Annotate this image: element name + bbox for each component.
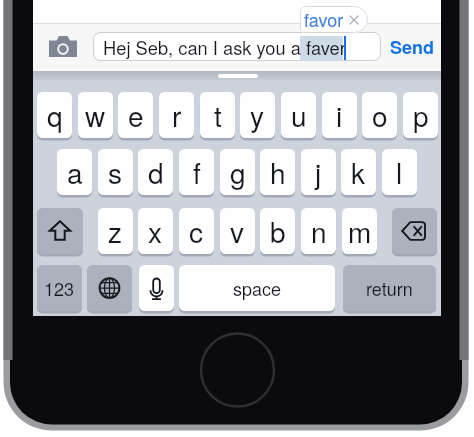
button[interactable]: p bbox=[403, 92, 438, 138]
staticText: b bbox=[270, 211, 286, 251]
button[interactable]: n bbox=[301, 208, 336, 254]
staticText: o bbox=[372, 95, 388, 135]
button[interactable]: t bbox=[200, 92, 235, 138]
button[interactable] bbox=[93, 32, 381, 61]
staticText: t bbox=[214, 95, 222, 135]
button[interactable]: f bbox=[179, 149, 214, 195]
staticText: p bbox=[413, 95, 429, 135]
button[interactable]: s bbox=[98, 149, 133, 195]
staticText: e bbox=[128, 95, 144, 135]
staticText: h bbox=[270, 152, 286, 192]
button[interactable]: g bbox=[220, 149, 255, 195]
staticText: 123 bbox=[44, 275, 75, 301]
staticText: i bbox=[336, 95, 343, 135]
staticText: r bbox=[172, 95, 182, 135]
staticText: g bbox=[230, 152, 246, 192]
staticText: return bbox=[366, 275, 413, 301]
staticText: v bbox=[230, 211, 245, 251]
button[interactable]: h bbox=[260, 149, 295, 195]
staticText: q bbox=[47, 95, 63, 135]
button[interactable]: x bbox=[138, 208, 173, 254]
button[interactable]: d bbox=[138, 149, 173, 195]
button[interactable]: y bbox=[240, 92, 275, 138]
button[interactable]: w bbox=[78, 92, 113, 138]
staticText: u bbox=[291, 95, 307, 135]
button[interactable]: m bbox=[342, 208, 377, 254]
button[interactable]: v bbox=[220, 208, 255, 254]
staticText: a bbox=[67, 152, 83, 192]
button[interactable]: u bbox=[281, 92, 316, 138]
button[interactable]: Dictate bbox=[139, 265, 174, 311]
staticText: w bbox=[85, 95, 106, 135]
button[interactable]: b bbox=[260, 208, 295, 254]
staticText: k bbox=[351, 152, 366, 192]
button[interactable]: a bbox=[57, 149, 92, 195]
button[interactable]: j bbox=[301, 149, 336, 195]
button[interactable]: favor bbox=[300, 6, 368, 33]
staticText: Hej Seb, can I ask you a faver bbox=[103, 34, 346, 60]
button[interactable]: Shift bbox=[37, 208, 83, 254]
button[interactable]: e bbox=[118, 92, 153, 138]
button[interactable]: l bbox=[382, 149, 417, 195]
button[interactable]: Send bbox=[390, 34, 435, 60]
button[interactable]: Backspace bbox=[392, 208, 437, 254]
button[interactable]: space bbox=[179, 265, 335, 311]
button[interactable]: q bbox=[37, 92, 72, 138]
staticText: y bbox=[250, 95, 265, 135]
button[interactable]: return bbox=[343, 265, 436, 311]
button[interactable]: Switch keyboard bbox=[87, 265, 132, 311]
staticText: d bbox=[148, 152, 164, 192]
staticText: favor bbox=[304, 6, 344, 32]
button[interactable]: Camera bbox=[49, 36, 77, 57]
button[interactable]: i bbox=[322, 92, 357, 138]
button[interactable]: k bbox=[341, 149, 376, 195]
staticText: l bbox=[396, 152, 403, 192]
staticText: space bbox=[233, 275, 282, 301]
staticText: x bbox=[148, 211, 163, 251]
staticText: j bbox=[315, 152, 322, 192]
staticText: n bbox=[311, 211, 327, 251]
button[interactable]: c bbox=[179, 208, 214, 254]
button[interactable]: r bbox=[159, 92, 194, 138]
button[interactable]: o bbox=[362, 92, 397, 138]
staticText: z bbox=[108, 211, 123, 251]
button[interactable]: z bbox=[98, 208, 133, 254]
button[interactable]: 123 bbox=[37, 265, 82, 311]
staticText: m bbox=[348, 211, 372, 251]
staticText: c bbox=[189, 211, 204, 251]
staticText: Send bbox=[390, 34, 435, 60]
staticText: s bbox=[108, 152, 123, 192]
staticText: f bbox=[193, 152, 201, 192]
